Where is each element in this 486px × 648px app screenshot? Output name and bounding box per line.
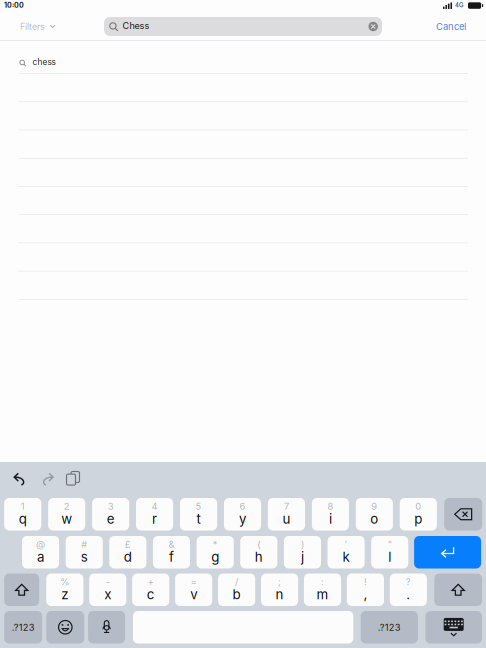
button[interactable]: 9 [356, 498, 393, 530]
staticText: * [213, 539, 218, 550]
staticText: c [147, 586, 155, 602]
button[interactable]: 2 [48, 498, 85, 530]
button[interactable]: Shift [4, 573, 39, 606]
button[interactable]: 6 [224, 498, 261, 530]
button[interactable]: Space [133, 611, 353, 643]
button[interactable]: chess [0, 41, 486, 72]
staticText: n [276, 586, 284, 602]
staticText: p [414, 511, 422, 527]
button[interactable]: # [66, 536, 103, 568]
staticText: i [329, 511, 332, 527]
staticText: 7 [284, 501, 289, 512]
button[interactable]: Dictate [88, 611, 125, 643]
button[interactable]: : [304, 573, 341, 606]
button[interactable]: 7 [268, 498, 305, 530]
staticText: Cancel [436, 21, 466, 32]
button[interactable]: £ [109, 536, 146, 568]
staticText: & [168, 539, 174, 550]
button[interactable]: Filters [14, 13, 62, 39]
button[interactable]: 3 [92, 498, 129, 530]
button[interactable]: Undo [8, 467, 30, 490]
staticText: : [321, 576, 324, 587]
staticText: # [81, 539, 87, 550]
button[interactable]: 5 [180, 498, 217, 530]
staticText: chess [32, 57, 55, 67]
staticText: ( [257, 539, 260, 550]
button[interactable]: Redo [37, 467, 59, 490]
staticText: ; [278, 576, 281, 587]
staticText: d [124, 549, 132, 565]
button[interactable]: ? [390, 573, 427, 606]
staticText: k [343, 549, 350, 565]
button[interactable]: - [89, 573, 126, 606]
staticText: 9 [371, 501, 377, 512]
button[interactable]: Shift [434, 573, 482, 606]
button[interactable]: Return [414, 536, 481, 568]
staticText: = [191, 576, 197, 587]
button[interactable]: 1 [4, 498, 41, 530]
staticText: 4G [455, 1, 464, 9]
staticText: .?123 [12, 622, 35, 633]
button[interactable]: ( [240, 536, 277, 568]
staticText: j [301, 549, 304, 565]
staticText: .?123 [378, 622, 401, 633]
button[interactable]: ; [261, 573, 298, 606]
staticText: ! [364, 576, 367, 587]
staticText: - [106, 576, 110, 587]
staticText: w [61, 511, 72, 527]
staticText: , [363, 586, 367, 602]
staticText: f [169, 549, 174, 565]
button[interactable]: @ [22, 536, 59, 568]
button[interactable]: * [197, 536, 234, 568]
staticText: @ [36, 539, 45, 550]
staticText: 0 [415, 501, 421, 512]
staticText: 8 [327, 501, 333, 512]
staticText: 5 [196, 501, 202, 512]
button[interactable]: .?123 [361, 611, 418, 643]
staticText: o [370, 511, 378, 527]
staticText: g [211, 549, 219, 565]
staticText: Chess [122, 20, 149, 31]
button[interactable]: / [218, 573, 255, 606]
button[interactable]: Hide keyboard [425, 611, 482, 643]
button[interactable]: 4 [136, 498, 173, 530]
button[interactable]: Emoji [46, 611, 84, 643]
button[interactable]: ! [347, 573, 384, 606]
staticText: ' [345, 539, 348, 550]
button[interactable]: 8 [312, 498, 349, 530]
staticText: % [60, 576, 69, 587]
staticText: r [152, 511, 157, 527]
button[interactable]: ) [284, 536, 321, 568]
button[interactable]: & [153, 536, 190, 568]
staticText: ? [406, 576, 411, 587]
button[interactable]: ' [328, 536, 365, 568]
staticText: l [388, 549, 391, 565]
button[interactable]: = [175, 573, 212, 606]
staticText: Filters [20, 21, 45, 32]
staticText: s [81, 549, 88, 565]
staticText: + [148, 576, 154, 587]
staticText: / [235, 576, 238, 587]
staticText: . [406, 586, 410, 602]
staticText: h [255, 549, 263, 565]
staticText: b [233, 586, 241, 602]
button[interactable]: Paste [61, 466, 85, 490]
staticText: 10:00 [4, 1, 24, 9]
staticText: " [388, 539, 392, 550]
button[interactable]: % [46, 573, 83, 606]
button[interactable]: Delete [444, 498, 482, 530]
staticText: £ [125, 539, 131, 550]
button[interactable]: + [132, 573, 169, 606]
button[interactable]: 0 [400, 498, 437, 530]
staticText: 4 [152, 501, 158, 512]
button[interactable]: Chess [104, 17, 382, 36]
button[interactable]: .?123 [4, 611, 42, 643]
staticText: 2 [64, 501, 70, 512]
staticText: 3 [108, 501, 114, 512]
staticText: m [316, 586, 328, 602]
button[interactable]: Cancel [429, 14, 473, 38]
staticText: t [197, 511, 201, 527]
staticText: y [239, 511, 246, 527]
button[interactable]: " [371, 536, 408, 568]
staticText: 6 [239, 501, 245, 512]
